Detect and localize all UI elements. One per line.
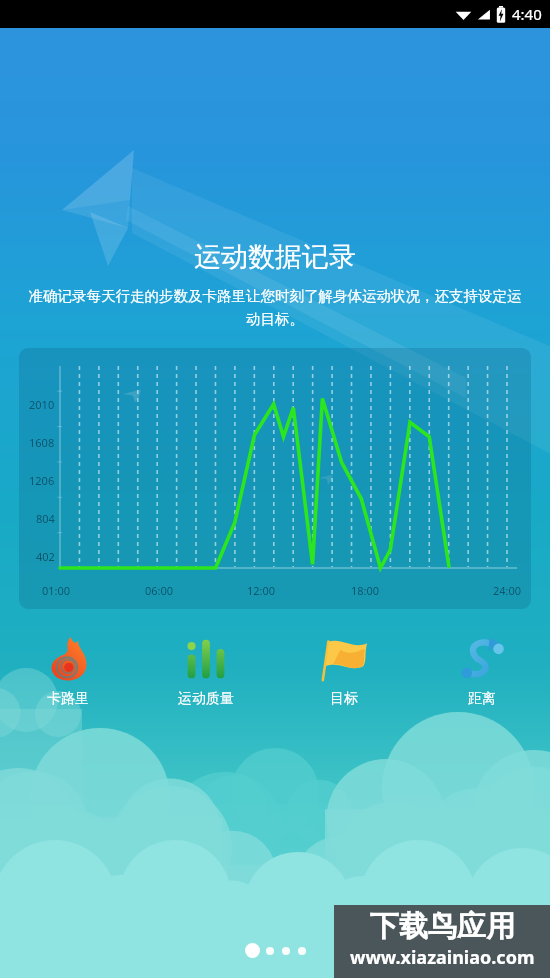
staticText: 准确记录每天行走的步数及卡路里让您时刻了解身体运动状况，还支持设定运动目标。: [28, 287, 522, 328]
staticText: 目标: [330, 690, 358, 708]
other: 运动质量: [183, 636, 229, 682]
button[interactable]: 2010: [19, 348, 531, 609]
button[interactable]: 距离: [438, 631, 526, 710]
other: 卡路里: [45, 636, 91, 682]
button[interactable]: 运动质量: [162, 631, 250, 710]
staticText: 402: [36, 549, 55, 564]
staticText: 12:00: [247, 583, 276, 598]
staticText: 运动质量: [178, 690, 234, 708]
staticText: 18:00: [351, 583, 380, 598]
staticText: 距离: [468, 690, 496, 708]
staticText: 运动数据记录: [0, 240, 550, 274]
staticText: 下载鸟应用: [370, 908, 515, 945]
staticText: 2010: [29, 397, 55, 412]
staticText: 804: [36, 511, 55, 526]
staticText: www.xiazainiao.com: [350, 945, 535, 970]
staticText: 01:00: [42, 583, 71, 598]
other: 目标: [321, 636, 367, 682]
staticText: 24:00: [493, 583, 522, 598]
staticText: 1206: [29, 473, 55, 488]
staticText: 1608: [29, 435, 55, 450]
button[interactable]: 目标: [300, 631, 388, 710]
staticText: 4:40: [512, 4, 542, 24]
button[interactable]: 卡路里: [24, 631, 112, 710]
other: 距离: [459, 636, 505, 682]
staticText: 卡路里: [47, 690, 89, 708]
staticText: 06:00: [145, 583, 174, 598]
